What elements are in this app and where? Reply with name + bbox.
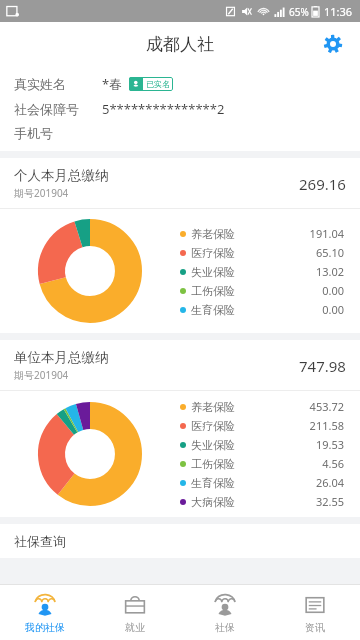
staticText: 医疗保险 (191, 419, 235, 433)
staticText: 期号201904 (14, 186, 69, 200)
staticText: 养老保险 (191, 400, 235, 414)
button[interactable]: 就业 (90, 585, 180, 640)
staticText: 32.55 (235, 494, 344, 509)
staticText: 269.16 (299, 174, 346, 194)
staticText: 养老保险 (191, 227, 235, 241)
staticText: 社保查询 (14, 533, 66, 549)
button[interactable]: 我的社保 (0, 585, 90, 640)
button[interactable]: 资讯 (270, 585, 360, 640)
staticText: 65.10 (235, 245, 344, 260)
staticText: 社保 (215, 621, 235, 634)
staticText: 26.04 (235, 475, 344, 490)
button[interactable]: Settings (318, 29, 348, 59)
staticText: 11:36 (324, 4, 353, 19)
staticText: *春 (102, 75, 123, 93)
staticText: 191.04 (235, 226, 344, 241)
staticText: 生育保险 (191, 476, 235, 490)
staticText: 失业保险 (191, 438, 235, 452)
staticText: 工伤保险 (191, 284, 235, 298)
staticText: 65% (289, 5, 309, 19)
button[interactable]: 单位本月总缴纳 (0, 340, 360, 517)
staticText: 期号201904 (14, 368, 69, 382)
staticText: 4.56 (235, 456, 344, 471)
button[interactable]: 社保 (180, 585, 270, 640)
staticText: 大病保险 (191, 495, 235, 509)
staticText: 0.00 (235, 302, 344, 317)
button[interactable]: 个人本月总缴纳 (0, 158, 360, 333)
staticText: 13.02 (235, 264, 344, 279)
staticText: 747.98 (299, 356, 346, 376)
staticText: 单位本月总缴纳 (14, 349, 109, 366)
staticText: 失业保险 (191, 265, 235, 279)
staticText: 211.58 (235, 418, 344, 433)
staticText: 我的社保 (25, 621, 65, 634)
staticText: 就业 (125, 621, 145, 634)
button[interactable]: 社保查询 (0, 524, 360, 558)
staticText: 资讯 (305, 621, 325, 634)
staticText: 社会保障号 (14, 101, 102, 117)
staticText: 生育保险 (191, 303, 235, 317)
staticText: 成都人社 (146, 34, 214, 55)
staticText: 医疗保险 (191, 246, 235, 260)
staticText: 手机号 (14, 125, 102, 141)
staticText: 工伤保险 (191, 457, 235, 471)
staticText: 19.53 (235, 437, 344, 452)
staticText: 个人本月总缴纳 (14, 167, 109, 184)
staticText: 0.00 (235, 283, 344, 298)
staticText: 5***************2 (102, 100, 225, 118)
staticText: 已实名 (146, 79, 170, 89)
staticText: 真实姓名 (14, 76, 102, 92)
staticText: 453.72 (235, 399, 344, 414)
